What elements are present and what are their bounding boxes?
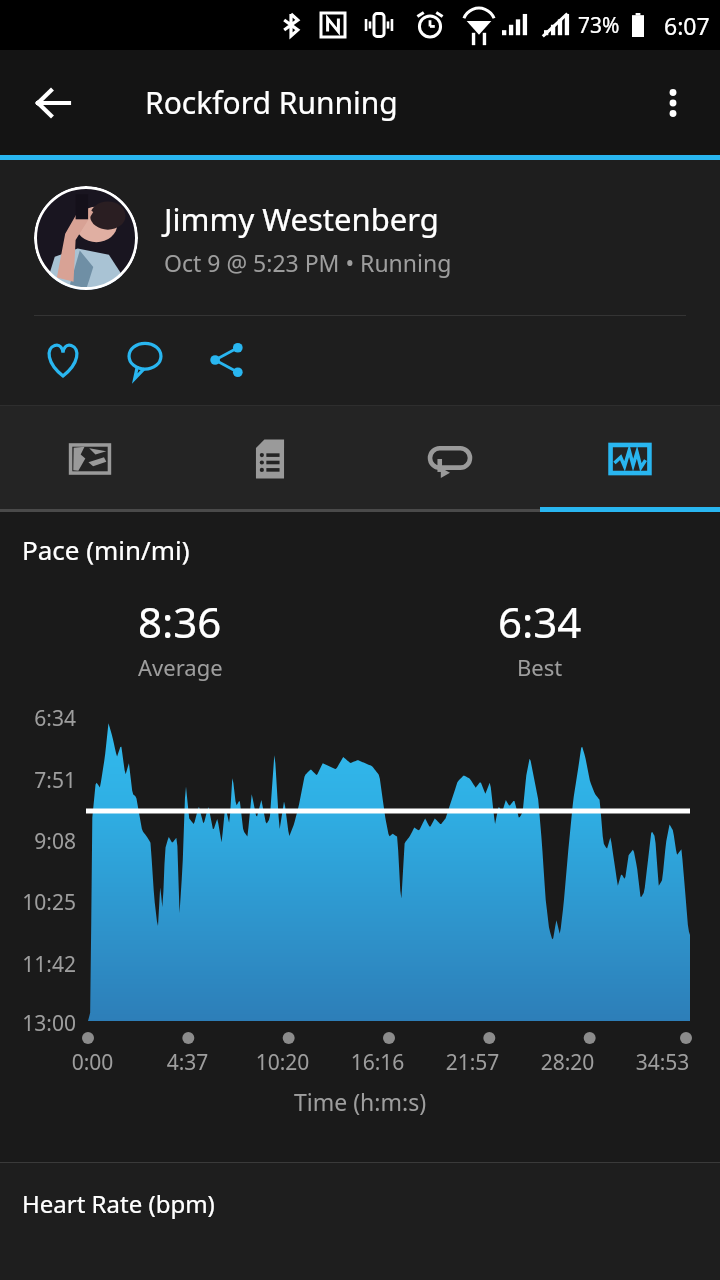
staticText: 34:53	[615, 1048, 710, 1077]
staticText: Oct 9 @ 5:23 PM • Running	[164, 247, 452, 278]
staticText: 16:16	[330, 1048, 425, 1077]
button[interactable]: More options	[640, 70, 706, 136]
staticText: 21:57	[425, 1048, 520, 1077]
staticText: 13:00	[0, 1009, 76, 1038]
staticText: Jimmy Westenberg	[164, 198, 439, 240]
button[interactable]: Like	[26, 323, 100, 397]
staticText: Heart Rate (bpm)	[22, 1187, 215, 1220]
staticText: 7:51	[0, 766, 76, 795]
button[interactable]: Back	[18, 68, 88, 138]
button[interactable]: Graphs	[540, 406, 720, 512]
staticText: 28:20	[520, 1048, 615, 1077]
staticText: Rockford Running	[145, 82, 398, 123]
staticText: 8:36	[138, 593, 222, 650]
button[interactable]: Share	[190, 323, 264, 397]
button[interactable]: Details	[180, 406, 360, 512]
staticText: 0:00	[45, 1048, 140, 1077]
staticText: Time (h:m:s)	[294, 1086, 427, 1117]
button[interactable]: Profile photo	[34, 186, 138, 290]
staticText: 6:07	[664, 10, 710, 41]
staticText: 9:08	[0, 827, 76, 856]
staticText: 10:25	[0, 888, 76, 917]
staticText: Average	[138, 652, 223, 682]
button[interactable]: Map	[0, 406, 180, 512]
staticText: 4:37	[140, 1048, 235, 1077]
staticText: Best	[517, 652, 563, 682]
staticText: 10:20	[235, 1048, 330, 1077]
staticText: 73%	[578, 11, 620, 40]
staticText: 6:34	[0, 704, 76, 733]
staticText: 11:42	[0, 950, 76, 979]
button[interactable]: Comment	[108, 323, 182, 397]
staticText: Pace (min/mi)	[22, 532, 190, 567]
button[interactable]: Laps	[360, 406, 540, 512]
staticText: 6:34	[498, 593, 582, 650]
